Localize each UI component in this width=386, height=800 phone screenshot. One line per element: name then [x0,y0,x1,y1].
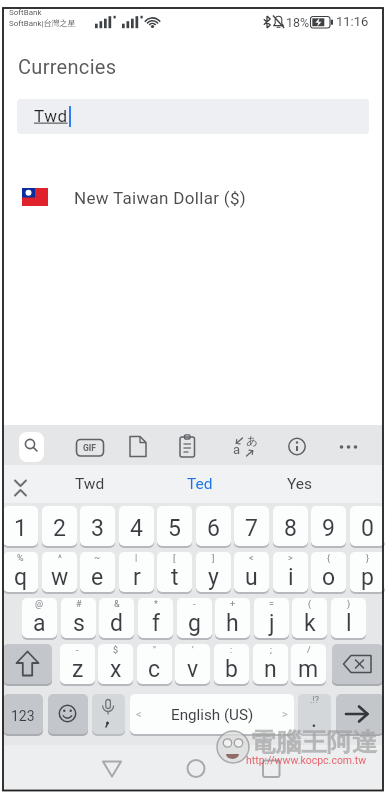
button[interactable]: ( [292,598,327,638]
button[interactable]: = [254,598,289,638]
staticText: ] [212,553,215,564]
staticText: 11:16 [336,14,369,29]
staticText: w [51,564,69,591]
staticText: | [135,553,138,564]
staticText: 2 [53,515,66,542]
button[interactable]: Twd [17,99,369,134]
button[interactable] [3,644,52,684]
button[interactable] [48,694,88,734]
button[interactable]: ' [175,644,210,684]
button[interactable] [330,428,366,464]
staticText: . [311,706,318,733]
button[interactable]: Ted [170,466,230,502]
staticText: @ [35,599,44,610]
button[interactable] [92,694,125,734]
staticText: SoftBank|台灣之星 [9,18,76,28]
button[interactable]: New Taiwan Dollar ($) [0,176,386,220]
button[interactable]: 3 [80,506,115,546]
button[interactable] [176,750,216,790]
button[interactable]: Twd [60,466,120,502]
staticText: Ted [187,475,213,493]
button[interactable]: 5 [157,506,192,546]
staticText: Twd [34,106,68,126]
button[interactable]: " [137,644,172,684]
staticText: ; [270,645,272,656]
staticText: h [226,610,239,637]
staticText: e [91,564,104,591]
staticText: 6 [207,515,220,542]
button[interactable]: | [119,552,154,592]
staticText: a [33,610,46,637]
button[interactable] [169,428,205,464]
button[interactable]: ; [253,644,288,684]
staticText: ^ [58,553,62,564]
button[interactable]: : [214,644,249,684]
button[interactable]: { [311,552,346,592]
staticText: = [269,599,274,610]
button[interactable]: 9 [311,506,346,546]
staticText: c [148,656,161,683]
staticText: b [225,656,238,683]
button[interactable] [19,432,44,462]
staticText: 123 [11,708,35,724]
button[interactable]: ) [331,598,366,638]
staticText: & [114,599,120,610]
staticText: 電腦王阿達 [250,726,378,758]
button[interactable]: # [61,598,96,638]
button[interactable]: / [291,644,326,684]
button[interactable] [251,750,291,790]
staticText: t [171,564,179,591]
button[interactable]: % [3,552,38,592]
staticText: " [153,645,156,656]
staticText: k [304,610,316,637]
button[interactable]: & [99,598,134,638]
staticText: n [264,656,277,683]
button[interactable]: $ [98,644,133,684]
staticText: .!? [310,695,319,706]
staticText: / [307,645,311,656]
staticText: m [298,656,319,683]
button[interactable]: < [234,552,269,592]
button[interactable]: ~ [80,552,115,592]
button[interactable]: 8 [273,506,308,546]
staticText: o [322,564,336,591]
staticText: SoftBank [9,8,42,17]
staticText: x [110,656,122,683]
staticText: 9 [322,515,335,542]
button[interactable]: 4 [119,506,154,546]
button[interactable]: 123 [3,694,43,734]
staticText: New Taiwan Dollar ($) [74,188,246,208]
staticText: q [14,564,28,591]
button[interactable]: * [138,598,173,638]
button[interactable]: + [215,598,250,638]
button[interactable]: 0 [350,506,385,546]
button[interactable]: - [60,644,95,684]
button[interactable]: 6 [196,506,231,546]
staticText: Twd [75,475,105,493]
staticText: : [230,645,233,656]
button[interactable] [336,694,384,734]
button[interactable]: 2 [42,506,77,546]
button[interactable]: Yes [270,466,330,502]
button[interactable] [279,428,315,464]
button[interactable] [92,750,132,790]
button[interactable]: ] [196,552,231,592]
button[interactable]: English (US) [130,694,294,734]
button[interactable]: [ [157,552,192,592]
button[interactable] [332,644,383,684]
button[interactable]: 1 [3,506,38,546]
button[interactable]: 7 [234,506,269,546]
button[interactable] [72,428,108,464]
staticText: http://www.kocpc.com.tw [246,754,367,766]
button[interactable]: } [350,552,385,592]
button[interactable]: - [177,598,212,638]
button[interactable]: ^ [42,552,77,592]
staticText: < [136,708,142,721]
button[interactable]: .!? [298,694,331,734]
staticText: 3 [91,515,104,542]
staticText: { [327,553,331,564]
button[interactable]: > [273,552,308,592]
button[interactable] [227,428,263,464]
button[interactable]: @ [22,598,57,638]
button[interactable] [119,428,155,464]
